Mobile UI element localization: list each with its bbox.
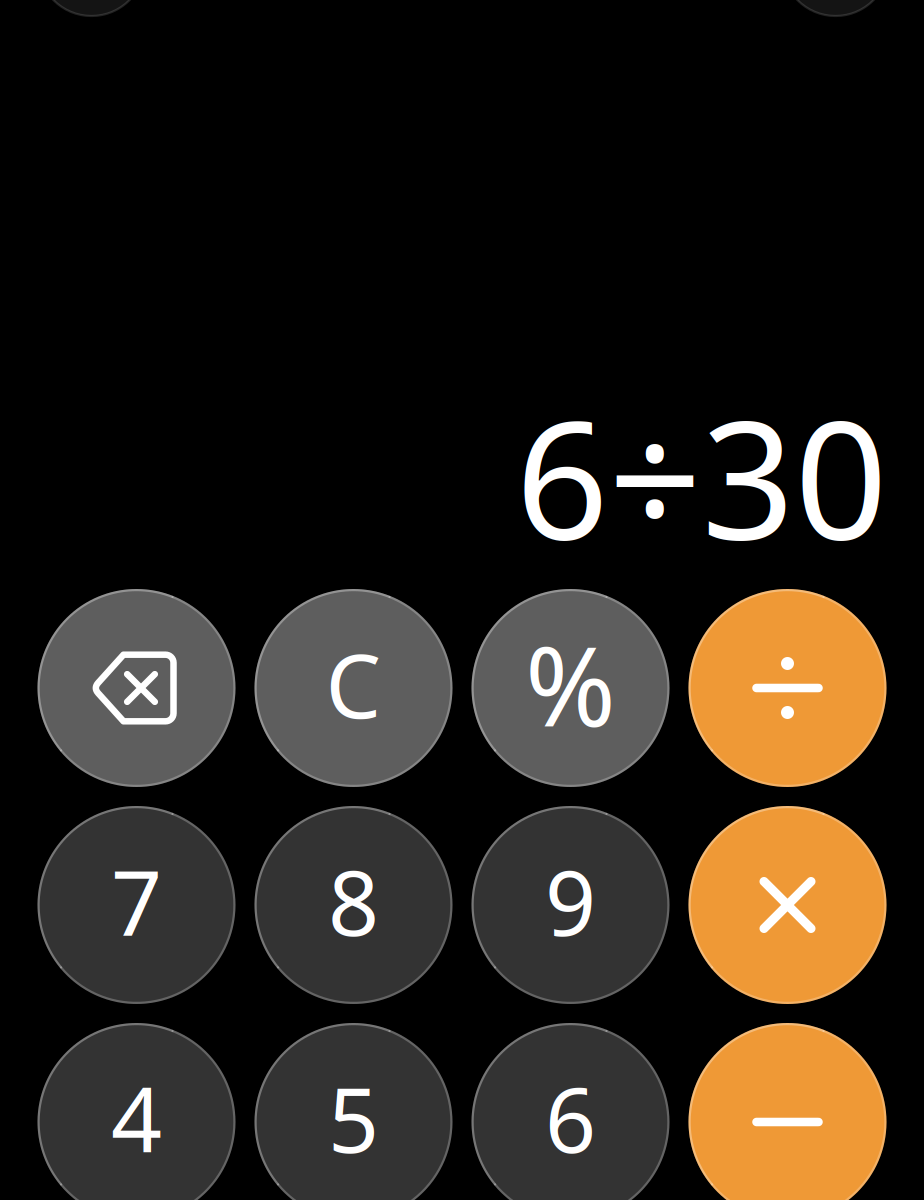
staticText: % [525,611,616,757]
staticText: 7 [111,842,162,960]
staticText: 8 [328,842,379,960]
button[interactable]: Multiply [688,806,886,1004]
button[interactable]: C [254,589,452,787]
staticText: 5 [328,1059,379,1177]
button[interactable]: 9 [471,806,669,1004]
staticText: 6÷30 [515,368,887,584]
staticText: 6 [545,1059,596,1177]
staticText: 4 [111,1059,162,1177]
staticText: C [325,626,381,742]
button[interactable]: 4 [37,1023,235,1200]
button[interactable]: 8 [254,806,452,1004]
button[interactable]: 6 [471,1023,669,1200]
button[interactable]: 5 [254,1023,452,1200]
button[interactable]: Delete [37,589,235,787]
button[interactable]: History [782,0,889,16]
button[interactable]: Divide [688,589,886,787]
button[interactable]: Subtract [688,1023,886,1200]
staticText: 9 [545,842,596,960]
button[interactable]: % [471,589,669,787]
button[interactable]: Calculator mode [38,0,145,16]
button[interactable]: 7 [37,806,235,1004]
